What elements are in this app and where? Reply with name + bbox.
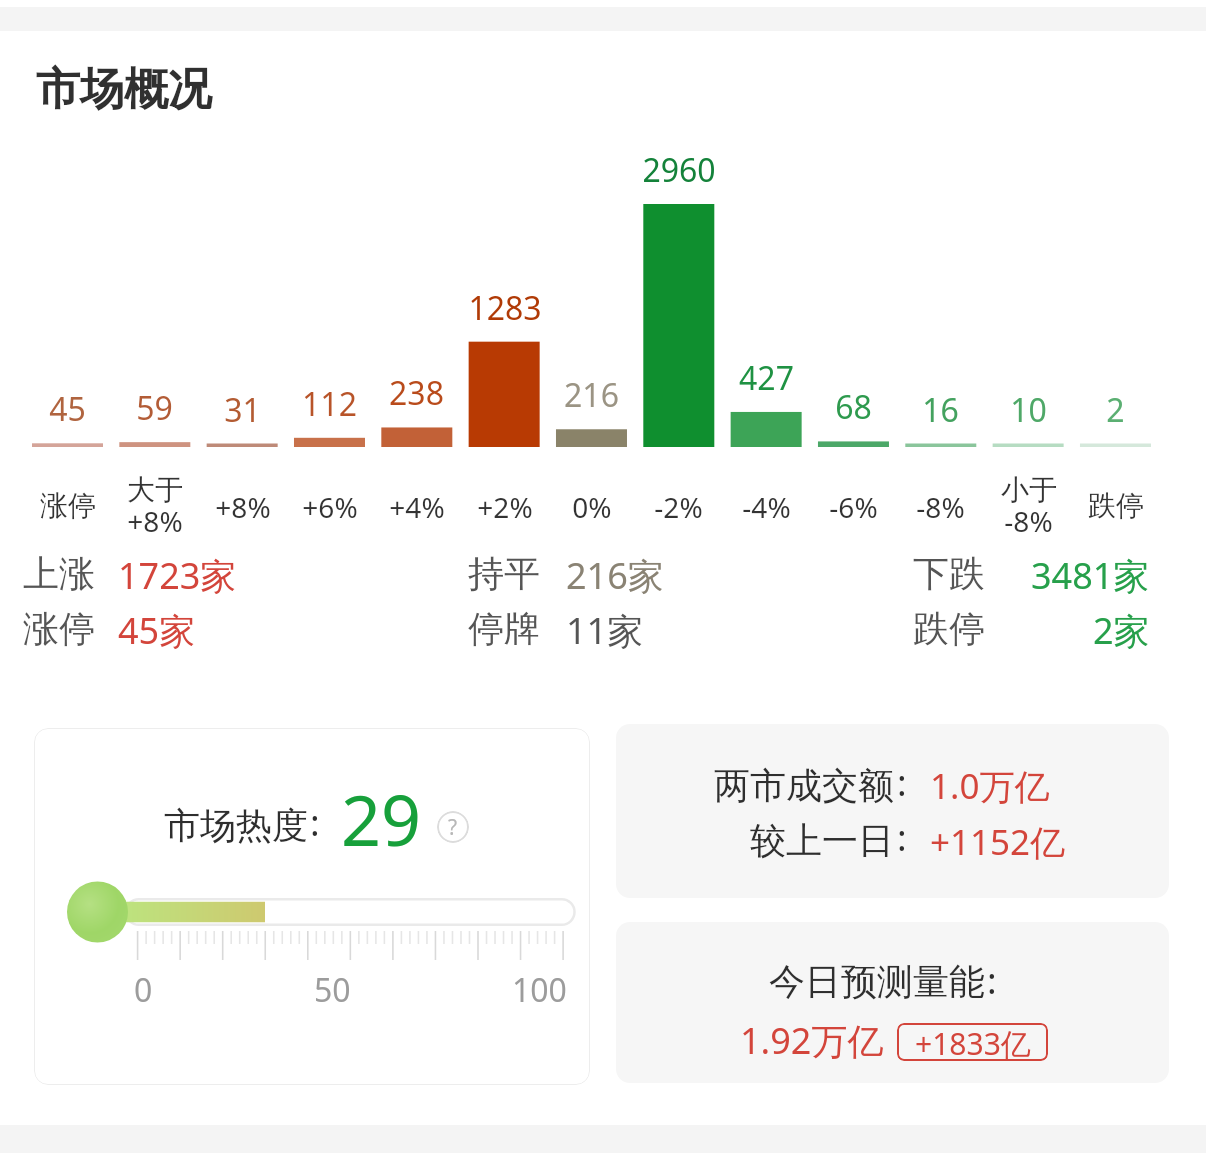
staticText: 112 (302, 382, 357, 426)
staticText: 1.0万亿 (930, 762, 1050, 810)
staticText: 今日预测量能 (769, 959, 985, 1004)
staticText: 31 (224, 388, 261, 432)
staticText: +1833亿 (915, 1023, 1031, 1061)
button[interactable]: 两市成交额 (616, 724, 1169, 898)
staticText: 238 (389, 371, 444, 415)
staticText: 16 (922, 388, 959, 432)
staticText: : (897, 813, 907, 862)
staticText: 0% (572, 488, 612, 526)
staticText: 跌停 (1088, 488, 1144, 523)
staticText: 涨停 (23, 606, 95, 651)
staticText: 1.92万亿 (740, 1016, 884, 1065)
staticText: 0 (134, 968, 153, 1012)
staticText: 427 (739, 356, 794, 400)
staticText: 上涨 (23, 551, 95, 596)
staticText: -8% (916, 488, 965, 526)
staticText: -6% (829, 488, 878, 526)
staticText: +6% (302, 488, 358, 526)
button[interactable]: 市场热度 (34, 728, 590, 1085)
staticText: -4% (742, 488, 791, 526)
staticText: ? (448, 813, 458, 842)
staticText: +1152亿 (930, 818, 1066, 866)
staticText: +8% (127, 502, 183, 540)
staticText: 45 (49, 387, 86, 431)
staticText: 45家 (118, 606, 196, 655)
staticText: +4% (389, 488, 445, 526)
staticText: 59 (136, 386, 173, 430)
staticText: 2 (1106, 388, 1125, 432)
staticText: 市场热度 (164, 803, 308, 848)
staticText: 50 (314, 968, 351, 1012)
staticText: 大于 (127, 472, 183, 507)
staticText: 两市成交额 (714, 763, 894, 808)
staticText: 2家 (1093, 606, 1150, 655)
staticText: 1723家 (118, 551, 237, 600)
staticText: 2960 (642, 148, 716, 192)
staticText: -8% (1004, 502, 1053, 540)
staticText: 11家 (566, 606, 644, 655)
staticText: : (897, 758, 907, 807)
staticText: 100 (512, 968, 567, 1012)
staticText: 216家 (566, 551, 664, 600)
staticText: 10 (1010, 388, 1047, 432)
staticText: 市场概况 (36, 62, 212, 117)
staticText: 下跌 (913, 551, 985, 596)
staticText: 涨停 (40, 488, 96, 523)
staticText: 停牌 (468, 606, 540, 651)
staticText: +8% (215, 488, 271, 526)
staticText: +2% (477, 488, 533, 526)
staticText: 1283 (468, 286, 542, 330)
staticText: 较上一日 (750, 818, 894, 863)
staticText: 29 (341, 771, 422, 866)
staticText: 小于 (1001, 472, 1057, 507)
staticText: 3481家 (1031, 551, 1150, 600)
button[interactable]: 市场热度说明 (437, 811, 469, 843)
staticText: 68 (835, 385, 872, 429)
staticText: -2% (654, 488, 703, 526)
staticText: 持平 (468, 551, 540, 596)
staticText: : (310, 798, 320, 847)
staticText: 216 (564, 373, 619, 417)
button[interactable]: 今日预测量能 (616, 922, 1169, 1083)
staticText: : (987, 956, 997, 1005)
staticText: 跌停 (913, 606, 985, 651)
